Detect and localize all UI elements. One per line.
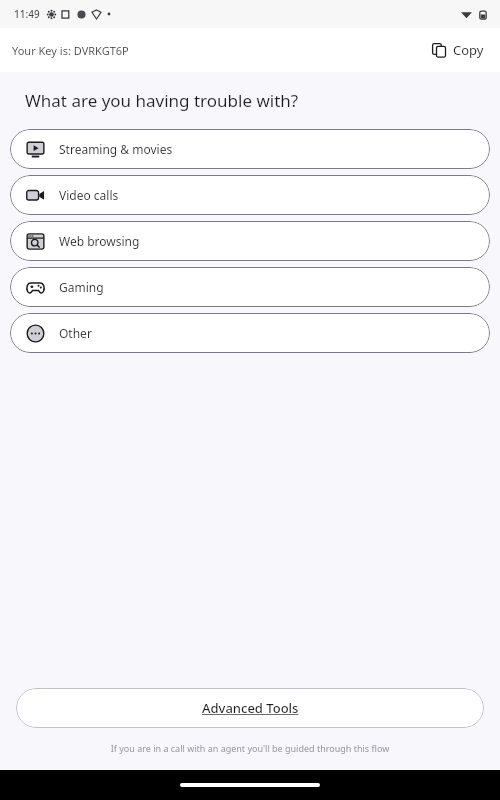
button[interactable]: Video calls — [10, 175, 490, 215]
button[interactable]: Streaming & movies — [10, 129, 490, 169]
staticText: Video calls — [59, 187, 119, 203]
button[interactable]: Copy — [428, 37, 488, 63]
staticText: Web browsing — [59, 233, 140, 249]
staticText: Other — [59, 325, 92, 341]
staticText: What are you having trouble with? — [25, 89, 299, 112]
staticText: If you are in a call with an agent you'l… — [24, 742, 476, 754]
staticText: Copy — [453, 41, 484, 59]
button[interactable]: Web browsing — [10, 221, 490, 261]
button[interactable]: Other — [10, 313, 490, 353]
staticText: Advanced Tools — [202, 699, 299, 717]
button[interactable]: Gaming — [10, 267, 490, 307]
staticText: Your Key is: DVRKGT6P — [12, 43, 129, 58]
staticText: 11:49 — [14, 7, 40, 21]
staticText: Gaming — [59, 279, 104, 295]
button[interactable]: Advanced Tools — [16, 688, 484, 728]
staticText: Streaming & movies — [59, 141, 173, 157]
